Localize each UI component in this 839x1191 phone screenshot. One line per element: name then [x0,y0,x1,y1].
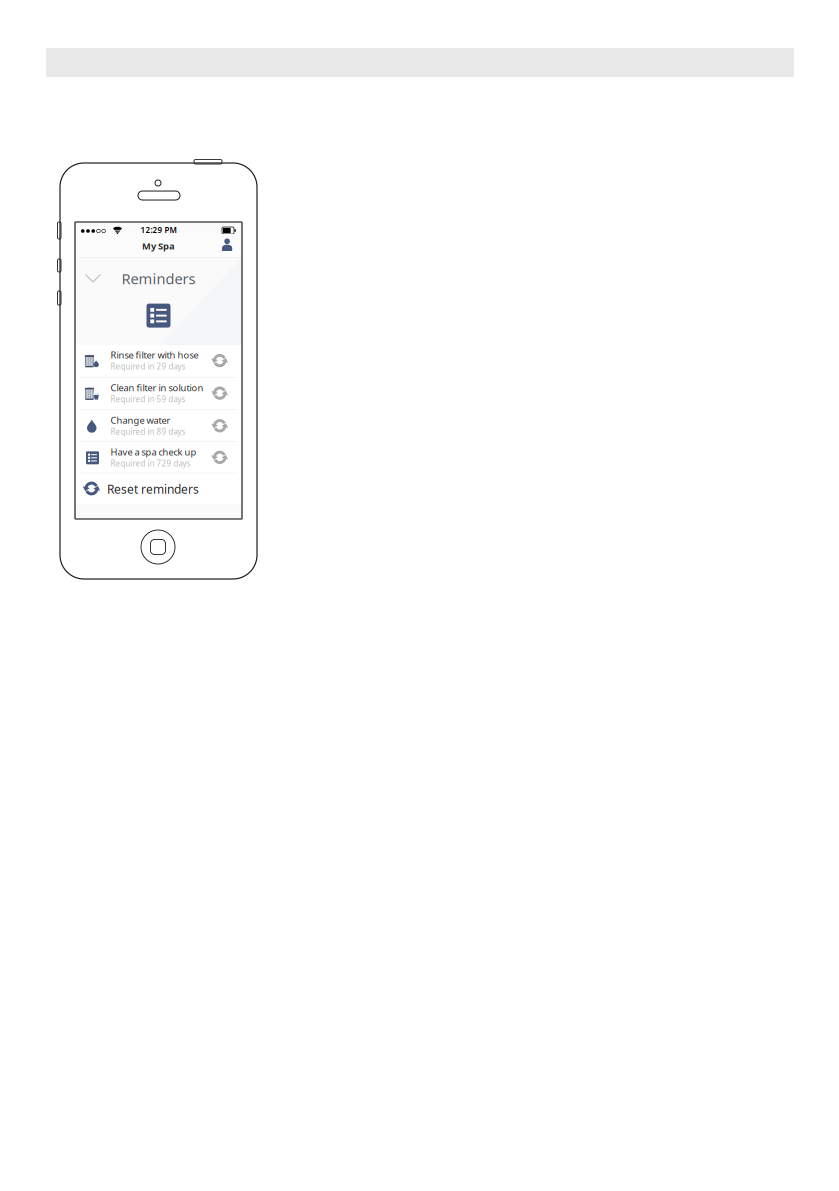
button[interactable]: Reset Change water [75,410,242,441]
staticText: Required in 29 days [110,361,185,372]
staticText: Required in 729 days [110,458,190,469]
staticText: Rinse filter with hose [110,349,198,361]
staticText: Reset reminders [107,481,199,497]
button[interactable]: Change water [75,410,242,441]
staticText: 12:29 PM [140,225,176,235]
staticText: Required in 59 days [110,394,185,404]
button[interactable]: Rinse filter with hose [75,345,242,377]
button[interactable]: Have a spa check up [75,442,242,473]
button[interactable]: Reset Clean filter in solution [75,378,242,410]
staticText: Reminders [121,269,195,288]
staticText: Change water [110,414,170,426]
staticText: My Spa [142,240,175,252]
staticText: Required in 89 days [110,426,185,437]
button[interactable]: Reset reminders [75,222,242,519]
button[interactable]: Clean filter in solution [75,378,242,410]
button[interactable]: Reset Have a spa check up [75,442,242,473]
button[interactable]: Collapse section [75,258,242,345]
button[interactable]: Reset Rinse filter with hose [75,345,242,377]
button[interactable]: Account [75,234,242,257]
staticText: Have a spa check up [110,446,196,458]
staticText: Clean filter in solution [110,381,203,394]
